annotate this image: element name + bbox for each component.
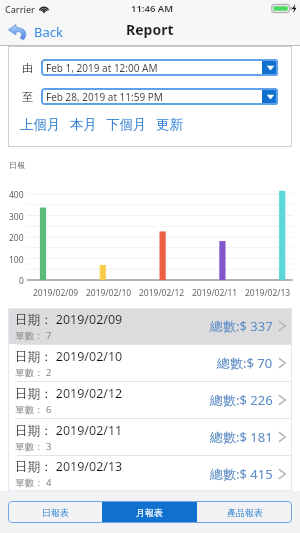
- button[interactable]: Feb 1, 2019 at 12:00 AM: [41, 59, 278, 76]
- staticText: 單數： 3: [15, 440, 52, 453]
- staticText: 日報表: [42, 507, 69, 518]
- button[interactable]: 上個月: [20, 116, 70, 133]
- other: Open date picker: [262, 59, 278, 76]
- staticText: 月報表: [136, 507, 163, 518]
- staticText: 上個月: [20, 116, 61, 133]
- button[interactable]: 更新: [156, 116, 192, 133]
- button[interactable]: Feb 28, 2019 at 11:59 PM: [41, 88, 278, 105]
- button[interactable]: 日期： 2019/02/09: [8, 308, 292, 344]
- staticText: 總數:$ 181: [210, 428, 273, 446]
- other: Back: [8, 24, 28, 40]
- other: Open date picker: [262, 88, 278, 105]
- button[interactable]: Back: [0, 18, 69, 46]
- staticText: Feb 28, 2019 at 11:59 PM: [46, 90, 163, 104]
- staticText: 更新: [156, 116, 183, 133]
- staticText: Back: [34, 23, 63, 41]
- staticText: 100: [9, 254, 24, 265]
- staticText: 11:46 AM: [131, 2, 174, 15]
- staticText: 2019/02/11: [192, 287, 238, 299]
- button[interactable]: 下個月: [106, 116, 156, 133]
- staticText: 產品報表: [227, 507, 263, 518]
- staticText: 下個月: [106, 116, 147, 133]
- staticText: 日期： 2019/02/10: [15, 348, 123, 365]
- staticText: 2019/02/12: [139, 287, 185, 299]
- staticText: 本月: [70, 116, 97, 133]
- staticText: 2019/02/09: [33, 287, 79, 299]
- staticText: 由: [22, 61, 33, 75]
- staticText: 總數:$ 226: [210, 391, 273, 409]
- staticText: 單數： 2: [15, 366, 52, 379]
- staticText: 單數： 4: [15, 476, 52, 489]
- button[interactable]: 日報表: [8, 501, 102, 523]
- button[interactable]: 本月: [70, 116, 106, 133]
- staticText: 至: [22, 90, 33, 104]
- staticText: Report: [126, 20, 174, 39]
- staticText: 單數： 6: [15, 403, 52, 416]
- button[interactable]: 產品報表: [197, 501, 292, 523]
- staticText: 日報: [9, 160, 25, 170]
- button[interactable]: 日期： 2019/02/11: [8, 419, 292, 455]
- staticText: 總數:$ 70: [217, 354, 273, 372]
- staticText: 總數:$ 337: [210, 317, 273, 335]
- staticText: 單數： 7: [15, 329, 52, 342]
- staticText: 日期： 2019/02/09: [15, 311, 123, 328]
- staticText: 總數:$ 415: [210, 465, 273, 483]
- staticText: 日期： 2019/02/12: [15, 385, 123, 402]
- staticText: Carrier: [5, 3, 35, 15]
- staticText: 300: [9, 211, 24, 222]
- staticText: 2019/02/13: [245, 287, 291, 299]
- staticText: 200: [9, 232, 24, 243]
- button[interactable]: 日期： 2019/02/12: [8, 382, 292, 418]
- button[interactable]: 日期： 2019/02/13: [8, 456, 292, 491]
- staticText: Feb 1, 2019 at 12:00 AM: [46, 61, 158, 75]
- staticText: 400: [9, 189, 24, 200]
- button[interactable]: 日期： 2019/02/10: [8, 345, 292, 381]
- staticText: 2019/02/10: [86, 287, 132, 299]
- button[interactable]: 月報表: [102, 501, 197, 523]
- staticText: 日期： 2019/02/11: [15, 422, 123, 439]
- staticText: 日期： 2019/02/13: [15, 458, 123, 475]
- staticText: 0: [19, 275, 24, 286]
